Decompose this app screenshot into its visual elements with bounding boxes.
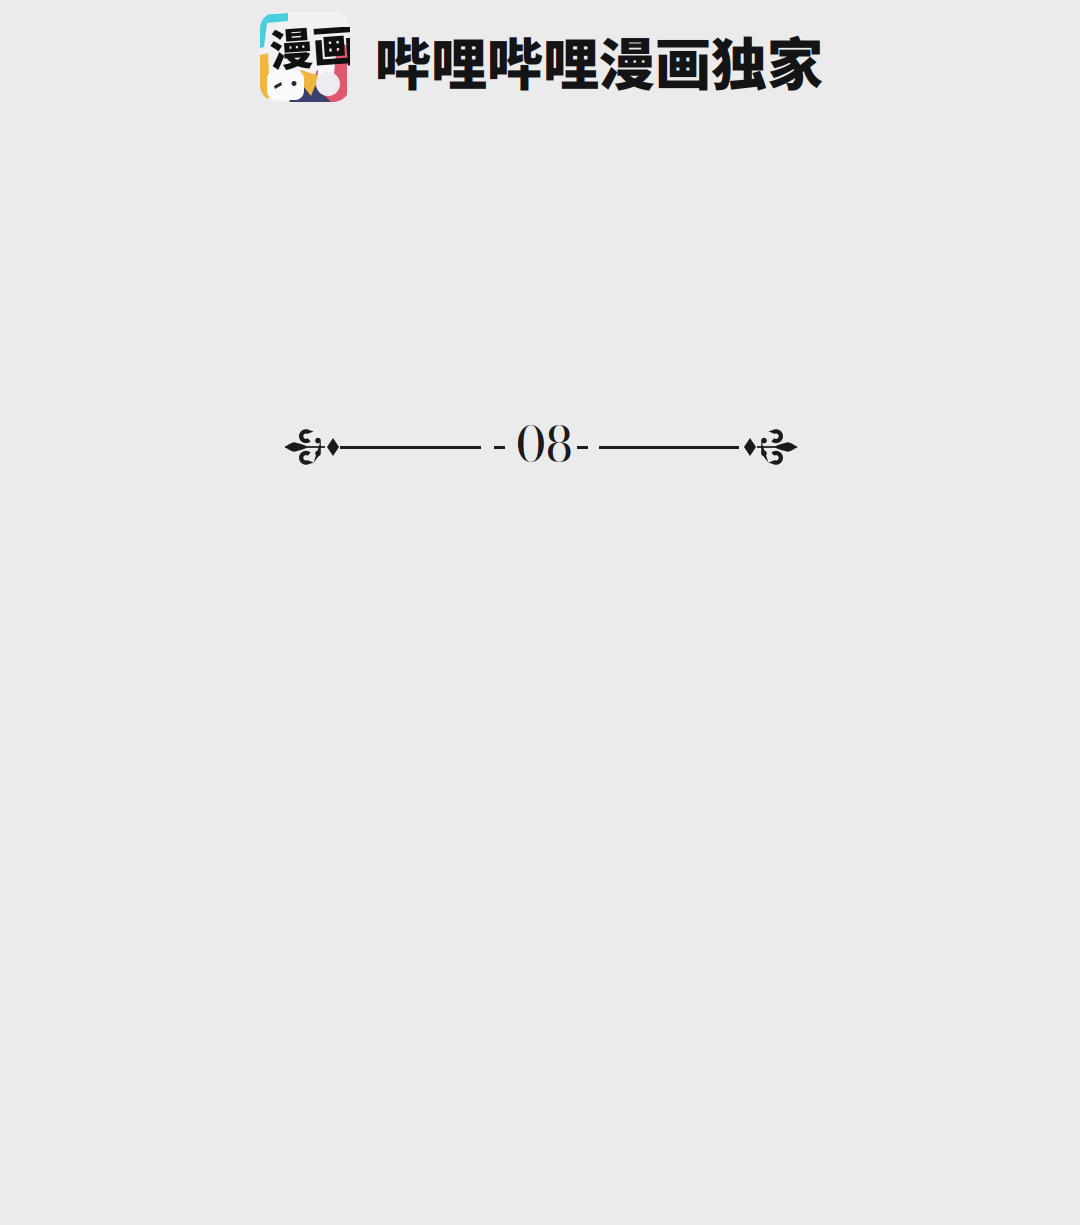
staticText: 08	[516, 408, 572, 481]
button[interactable]: 漫画	[260, 12, 822, 102]
staticText: 哔哩哔哩漫画独家	[375, 19, 823, 101]
staticText: 漫画	[269, 14, 355, 76]
